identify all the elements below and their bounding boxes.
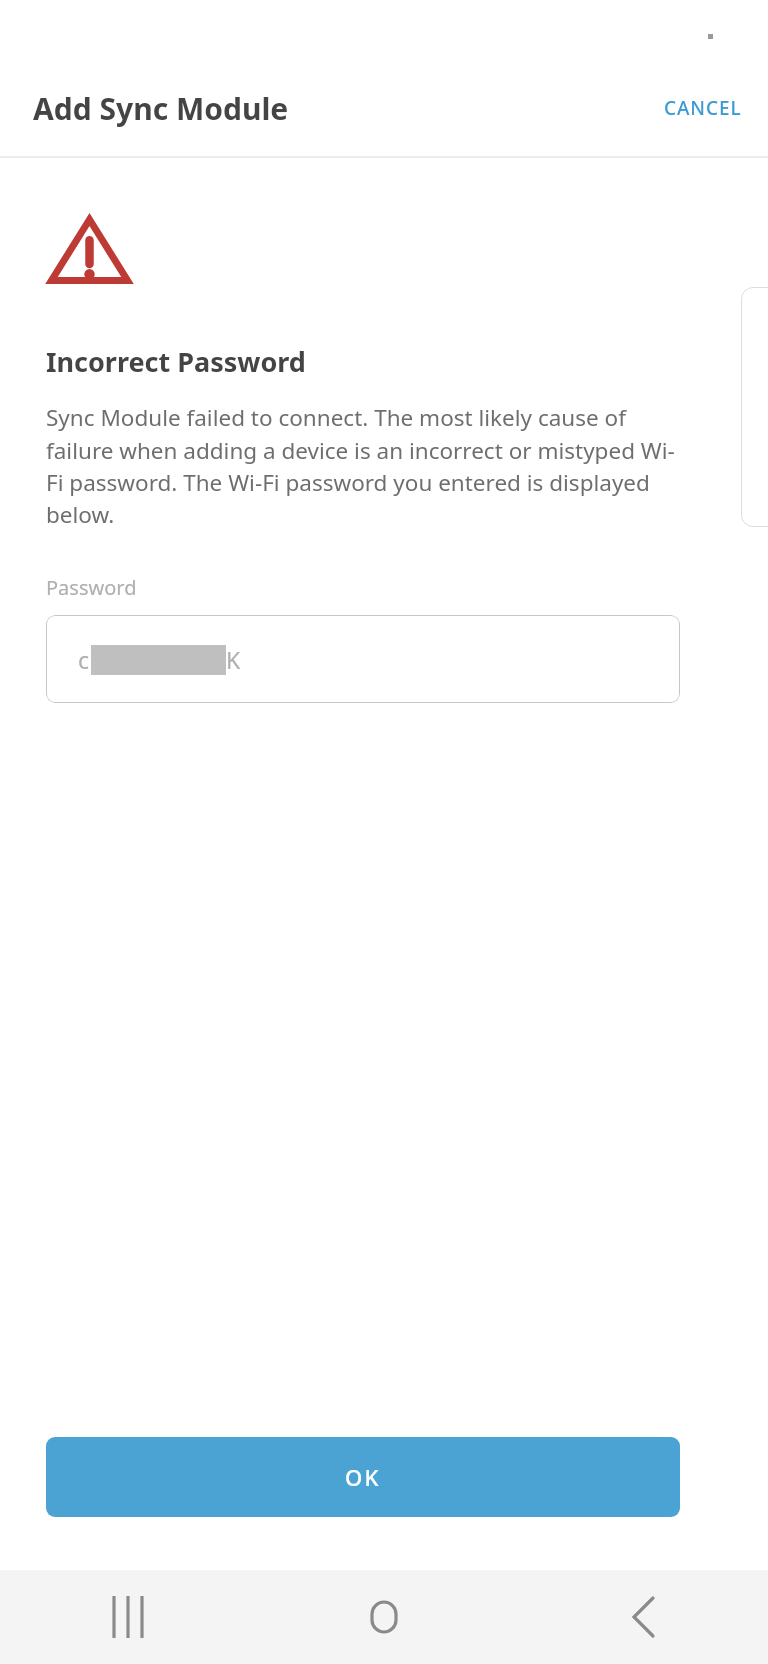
button[interactable]: Back [512, 1570, 768, 1664]
button[interactable]: Recent apps [0, 1570, 256, 1664]
staticText: Sync Module failed to connect. The most … [46, 402, 684, 529]
staticText: Incorrect Password [46, 343, 306, 380]
staticText: K [226, 644, 241, 675]
button[interactable]: c [46, 615, 680, 703]
staticText: Password [46, 574, 137, 601]
staticText: Add Sync Module [33, 88, 289, 129]
staticText: c [78, 644, 90, 675]
button[interactable]: OK [46, 1437, 680, 1517]
staticText: CANCEL [664, 95, 742, 121]
staticText: OK [345, 1462, 381, 1492]
button[interactable]: Home [256, 1570, 512, 1664]
button[interactable]: CANCEL [638, 79, 768, 137]
